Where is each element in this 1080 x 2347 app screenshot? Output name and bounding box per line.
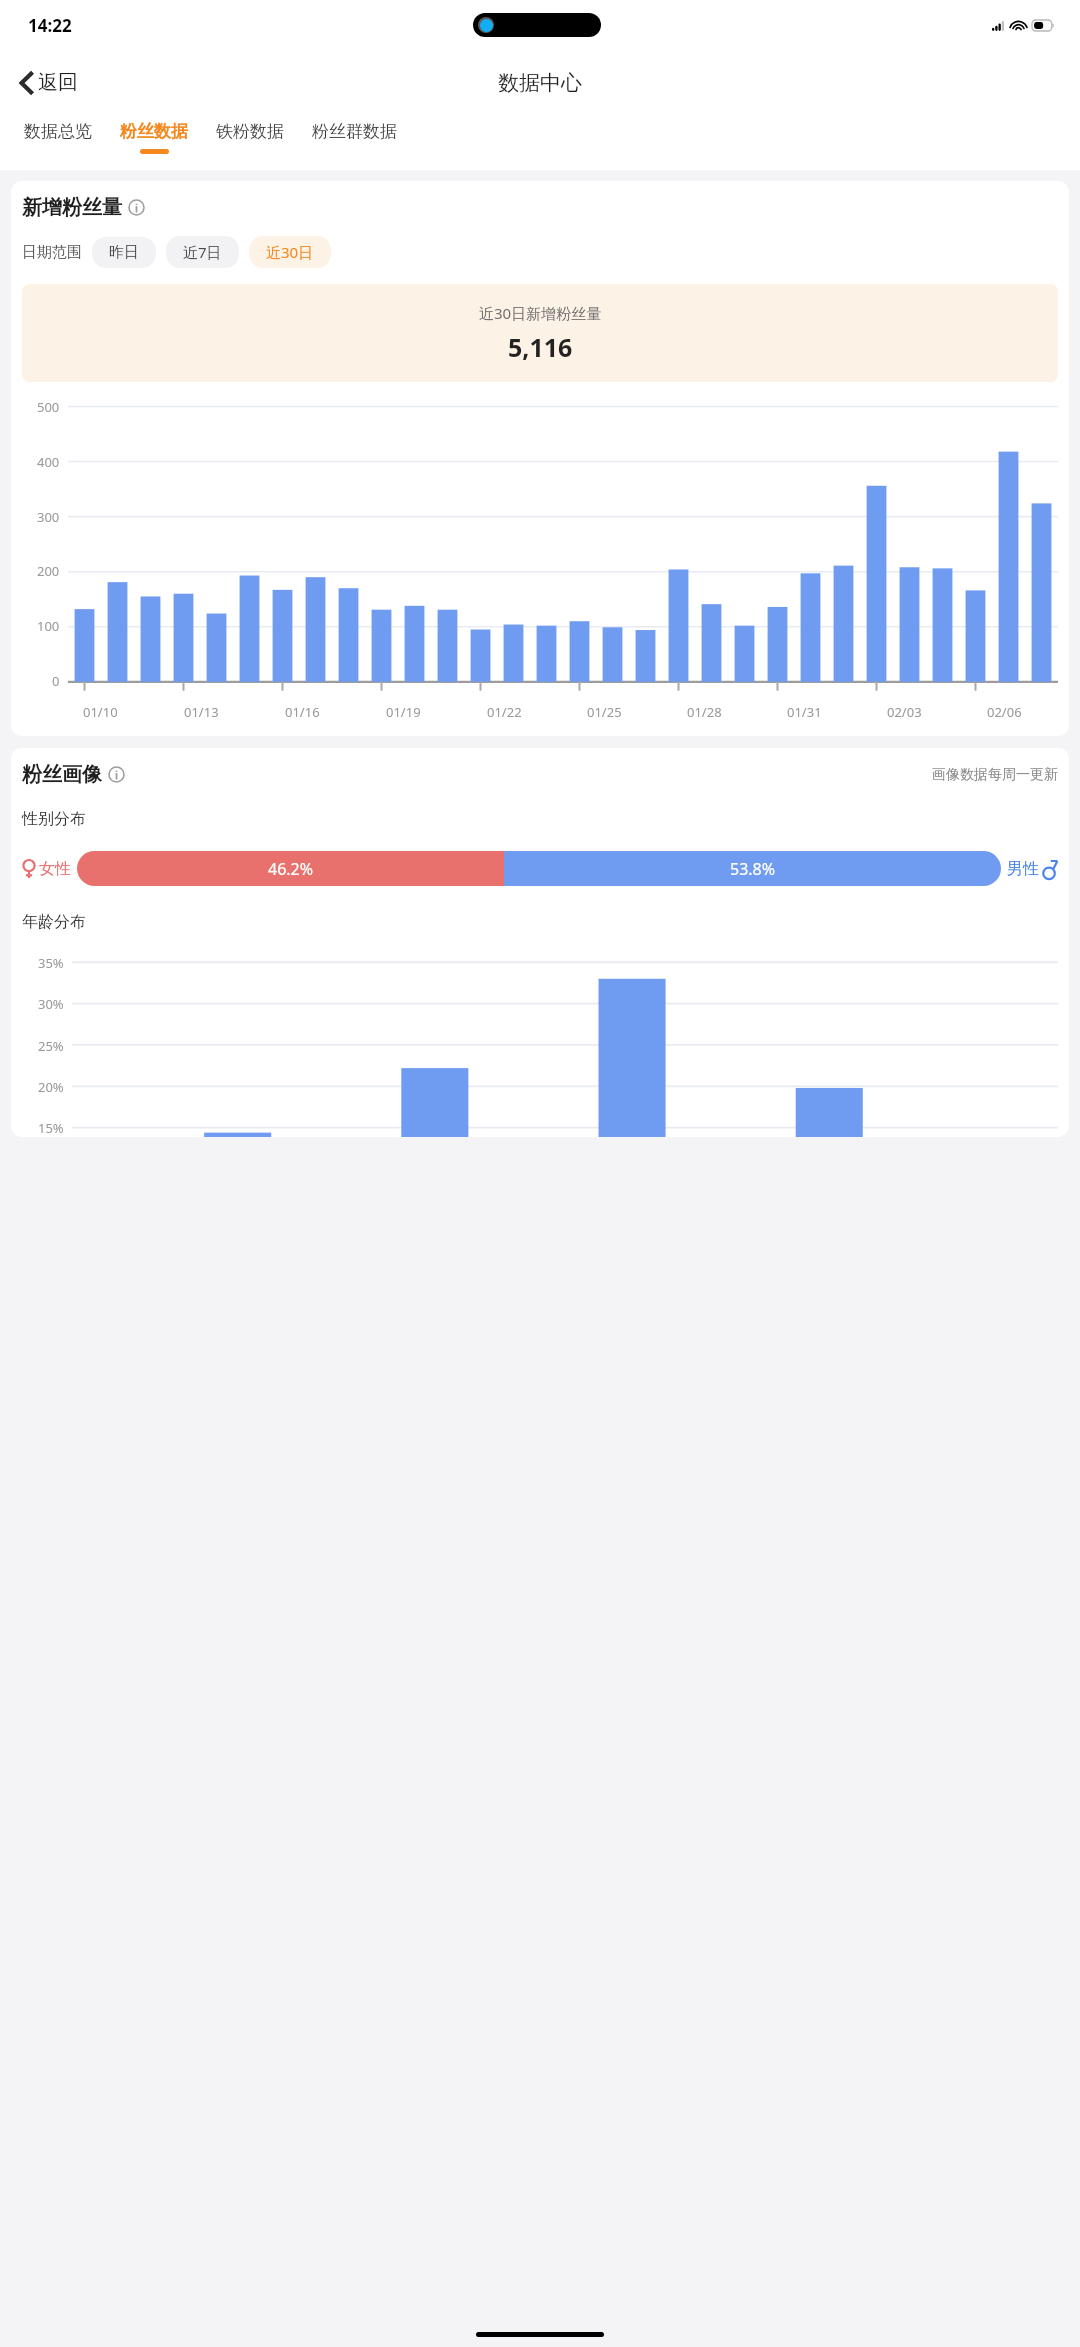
staticText: 100 [37,617,60,635]
button[interactable]: 粉丝数据 [106,117,202,158]
staticText: 年龄分布 [22,912,86,932]
staticText: 200 [37,562,60,580]
staticText: 01/16 [285,703,320,721]
staticText: 300 [37,508,60,526]
staticText: 0 [52,672,60,690]
staticText: 粉丝数据 [120,121,188,142]
staticText: 近30日 [266,242,314,262]
staticText: 日期范围 [22,243,82,262]
staticText: 粉丝群数据 [312,121,397,142]
staticText: 近7日 [183,242,222,262]
staticText: 昨日 [109,243,139,262]
staticText: 01/25 [587,703,622,721]
staticText: 返回 [38,70,78,95]
staticText: 男性 [1007,859,1039,879]
button[interactable]: 昨日 [92,237,156,268]
staticText: 02/06 [987,703,1022,721]
staticText: 画像数据每周一更新 [932,766,1058,784]
staticText: 新增粉丝量 [22,195,122,220]
staticText: 20% [38,1078,64,1096]
staticText: 铁粉数据 [216,121,284,142]
button[interactable]: 数据总览 [10,117,106,153]
staticText: 46.2% [268,858,314,880]
staticText: 400 [37,453,60,471]
staticText: 15% [38,1119,64,1137]
staticText: 数据中心 [498,70,582,96]
button[interactable]: 近30日 [249,236,331,268]
button[interactable]: 返回 [0,62,90,103]
staticText: 14:22 [28,14,72,37]
staticText: 500 [37,398,60,416]
staticText: 01/22 [487,703,522,721]
staticText: 01/19 [386,703,421,721]
staticText: 01/10 [83,703,118,721]
staticText: 01/13 [184,703,219,721]
button[interactable]: 近7日 [166,236,239,268]
staticText: 近30日新增粉丝量 [479,303,602,323]
staticText: 25% [38,1037,64,1055]
staticText: 53.8% [730,858,776,880]
staticText: 01/28 [687,703,722,721]
staticText: 01/31 [787,703,822,721]
staticText: 35% [38,954,64,972]
staticText: 30% [38,995,64,1013]
staticText: 数据总览 [24,121,92,142]
staticText: 5,116 [508,330,573,364]
staticText: 女性 [39,859,71,879]
staticText: 02/03 [887,703,922,721]
staticText: 性别分布 [22,809,86,829]
button[interactable]: 铁粉数据 [202,117,298,153]
staticText: 粉丝画像 [22,762,102,787]
button[interactable]: 粉丝群数据 [298,117,411,153]
